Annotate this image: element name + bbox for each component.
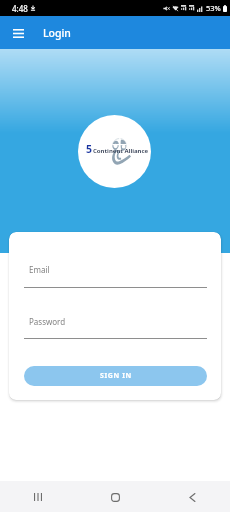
staticText: Password (29, 316, 66, 327)
button[interactable]: Recent apps (23, 482, 53, 512)
button[interactable]: Open navigation menu (7, 22, 29, 44)
button[interactable]: Back (177, 482, 207, 512)
staticText: Continent Alliance (93, 147, 149, 155)
staticText: 5 (86, 142, 93, 156)
staticText: Email (29, 264, 50, 275)
staticText: Login (43, 26, 71, 40)
button[interactable]: SIGN IN (24, 366, 207, 386)
button[interactable]: Email (24, 264, 207, 288)
staticText: 53% (206, 3, 221, 13)
staticText: 4:48 (12, 3, 28, 14)
staticText: SIGN IN (100, 371, 132, 381)
button[interactable]: Password (24, 316, 207, 339)
button[interactable]: Home (100, 482, 130, 512)
